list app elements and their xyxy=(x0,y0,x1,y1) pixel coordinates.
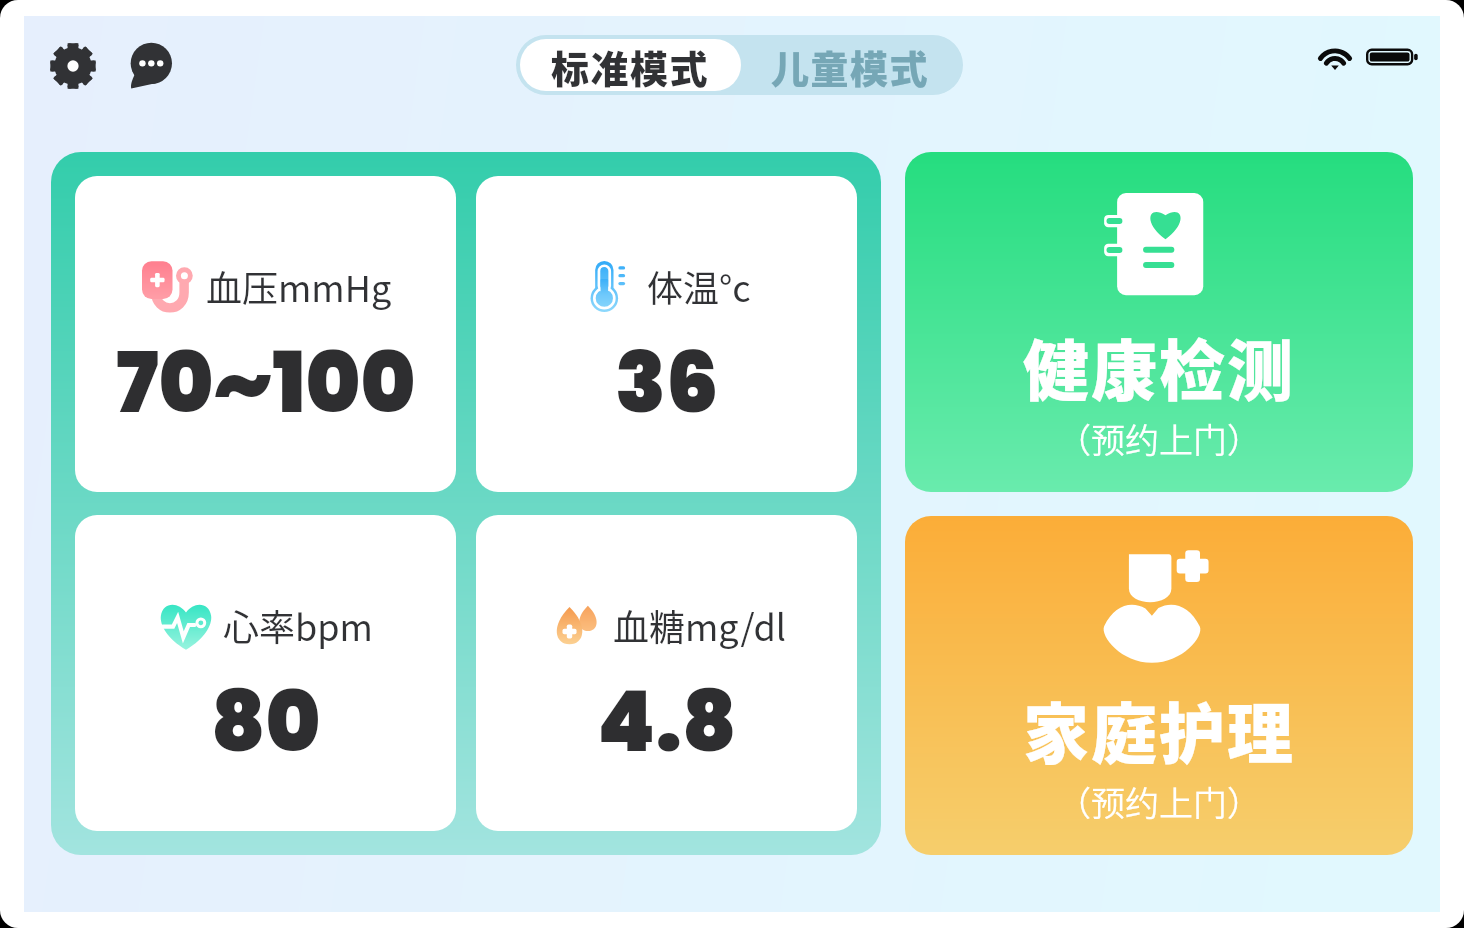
button[interactable]: Messages xyxy=(118,34,182,98)
staticText: 标准模式 xyxy=(551,39,710,91)
button[interactable]: Settings xyxy=(41,34,105,98)
staticText: 4.8 xyxy=(597,664,737,780)
button[interactable]: 体温°c xyxy=(476,176,857,492)
staticText: 70~100 xyxy=(116,325,416,441)
staticText: （预约上门） xyxy=(1057,414,1261,463)
button[interactable]: 健康检测 xyxy=(905,152,1413,492)
staticText: 心率bpm xyxy=(223,599,373,651)
button[interactable]: 血糖mg/dl xyxy=(476,515,857,831)
staticText: 36 xyxy=(615,325,719,441)
staticText: 家庭护理 xyxy=(1023,681,1295,777)
button[interactable]: 家庭护理 xyxy=(905,516,1413,855)
staticText: 血压mmHg xyxy=(206,260,392,312)
staticText: 健康检测 xyxy=(1023,318,1295,414)
staticText: 血糖mg/dl xyxy=(613,599,786,651)
button[interactable]: 儿童模式 xyxy=(741,39,959,91)
button[interactable]: 心率bpm xyxy=(75,515,456,831)
staticText: 体温°c xyxy=(647,260,751,312)
button[interactable]: 血压mmHg xyxy=(75,176,456,492)
staticText: （预约上门） xyxy=(1057,777,1261,826)
staticText: 80 xyxy=(211,664,321,780)
button[interactable]: 标准模式 xyxy=(520,39,741,91)
staticText: 儿童模式 xyxy=(771,39,930,91)
